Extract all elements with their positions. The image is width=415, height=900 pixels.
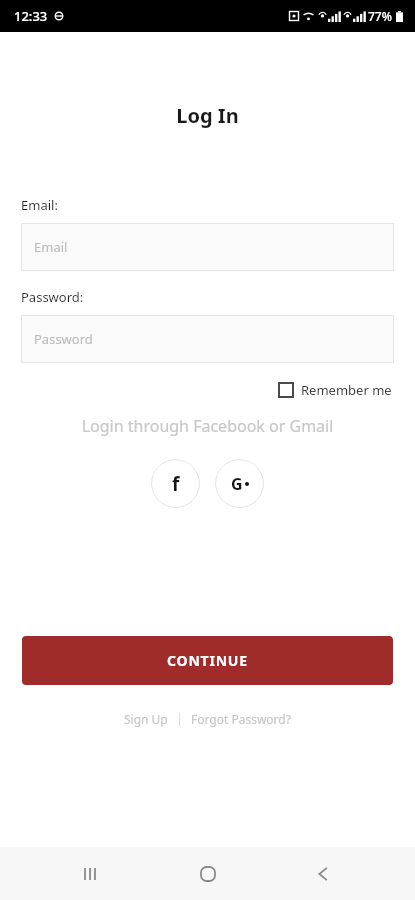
staticText: f	[172, 471, 180, 497]
button[interactable]: Remember me	[276, 379, 394, 401]
staticText: Remember me	[301, 381, 392, 399]
button[interactable]: Back	[299, 850, 347, 898]
staticText: Email:	[21, 196, 58, 214]
staticText: CONTINUE	[167, 651, 248, 670]
staticText: Forgot Password?	[191, 711, 291, 727]
staticText: Password	[34, 330, 93, 348]
staticText: 77%	[368, 8, 392, 24]
staticText: G	[231, 473, 243, 495]
staticText: Sign Up	[124, 711, 168, 727]
button[interactable]: Sign Up	[121, 709, 171, 729]
button[interactable]: Login with Facebook	[151, 459, 200, 508]
button[interactable]: Password	[21, 315, 394, 363]
button[interactable]: Email	[21, 223, 394, 271]
staticText: Email	[34, 238, 68, 256]
staticText: Log In	[0, 102, 415, 129]
button[interactable]: Forgot Password?	[188, 709, 294, 729]
button[interactable]: Login with Google	[215, 459, 264, 508]
button[interactable]: Recent apps	[68, 850, 116, 898]
staticText: Login through Facebook or Gmail	[0, 415, 415, 437]
staticText: 12:33	[14, 7, 48, 25]
staticText: Password:	[21, 288, 84, 306]
button[interactable]: Home	[184, 850, 232, 898]
button[interactable]: CONTINUE	[22, 636, 393, 685]
